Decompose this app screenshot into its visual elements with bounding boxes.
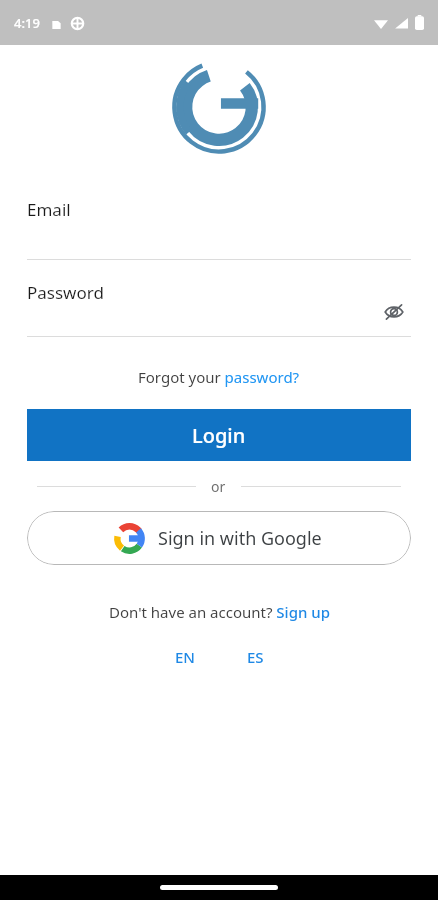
staticText: Login [192, 422, 246, 449]
staticText: ES [247, 647, 264, 667]
button[interactable]: EN [166, 642, 204, 672]
button[interactable]: Show password [377, 295, 411, 329]
button[interactable]: Login [27, 409, 411, 461]
staticText: or [211, 477, 226, 496]
button[interactable]: Sign in with Google [27, 511, 411, 565]
button[interactable]: Don't have an account? Sign up [103, 599, 336, 625]
button[interactable]: Forgot your password? [132, 364, 306, 390]
staticText: Email [27, 198, 71, 221]
staticText: 4:19 [14, 14, 40, 32]
staticText: Don't have an account? Sign up [109, 602, 330, 622]
staticText: Password [27, 281, 104, 304]
staticText: EN [175, 647, 195, 667]
staticText: Forgot your password? [138, 367, 300, 387]
staticText: Sign in with Google [158, 526, 322, 551]
button[interactable]: ES [238, 642, 273, 672]
